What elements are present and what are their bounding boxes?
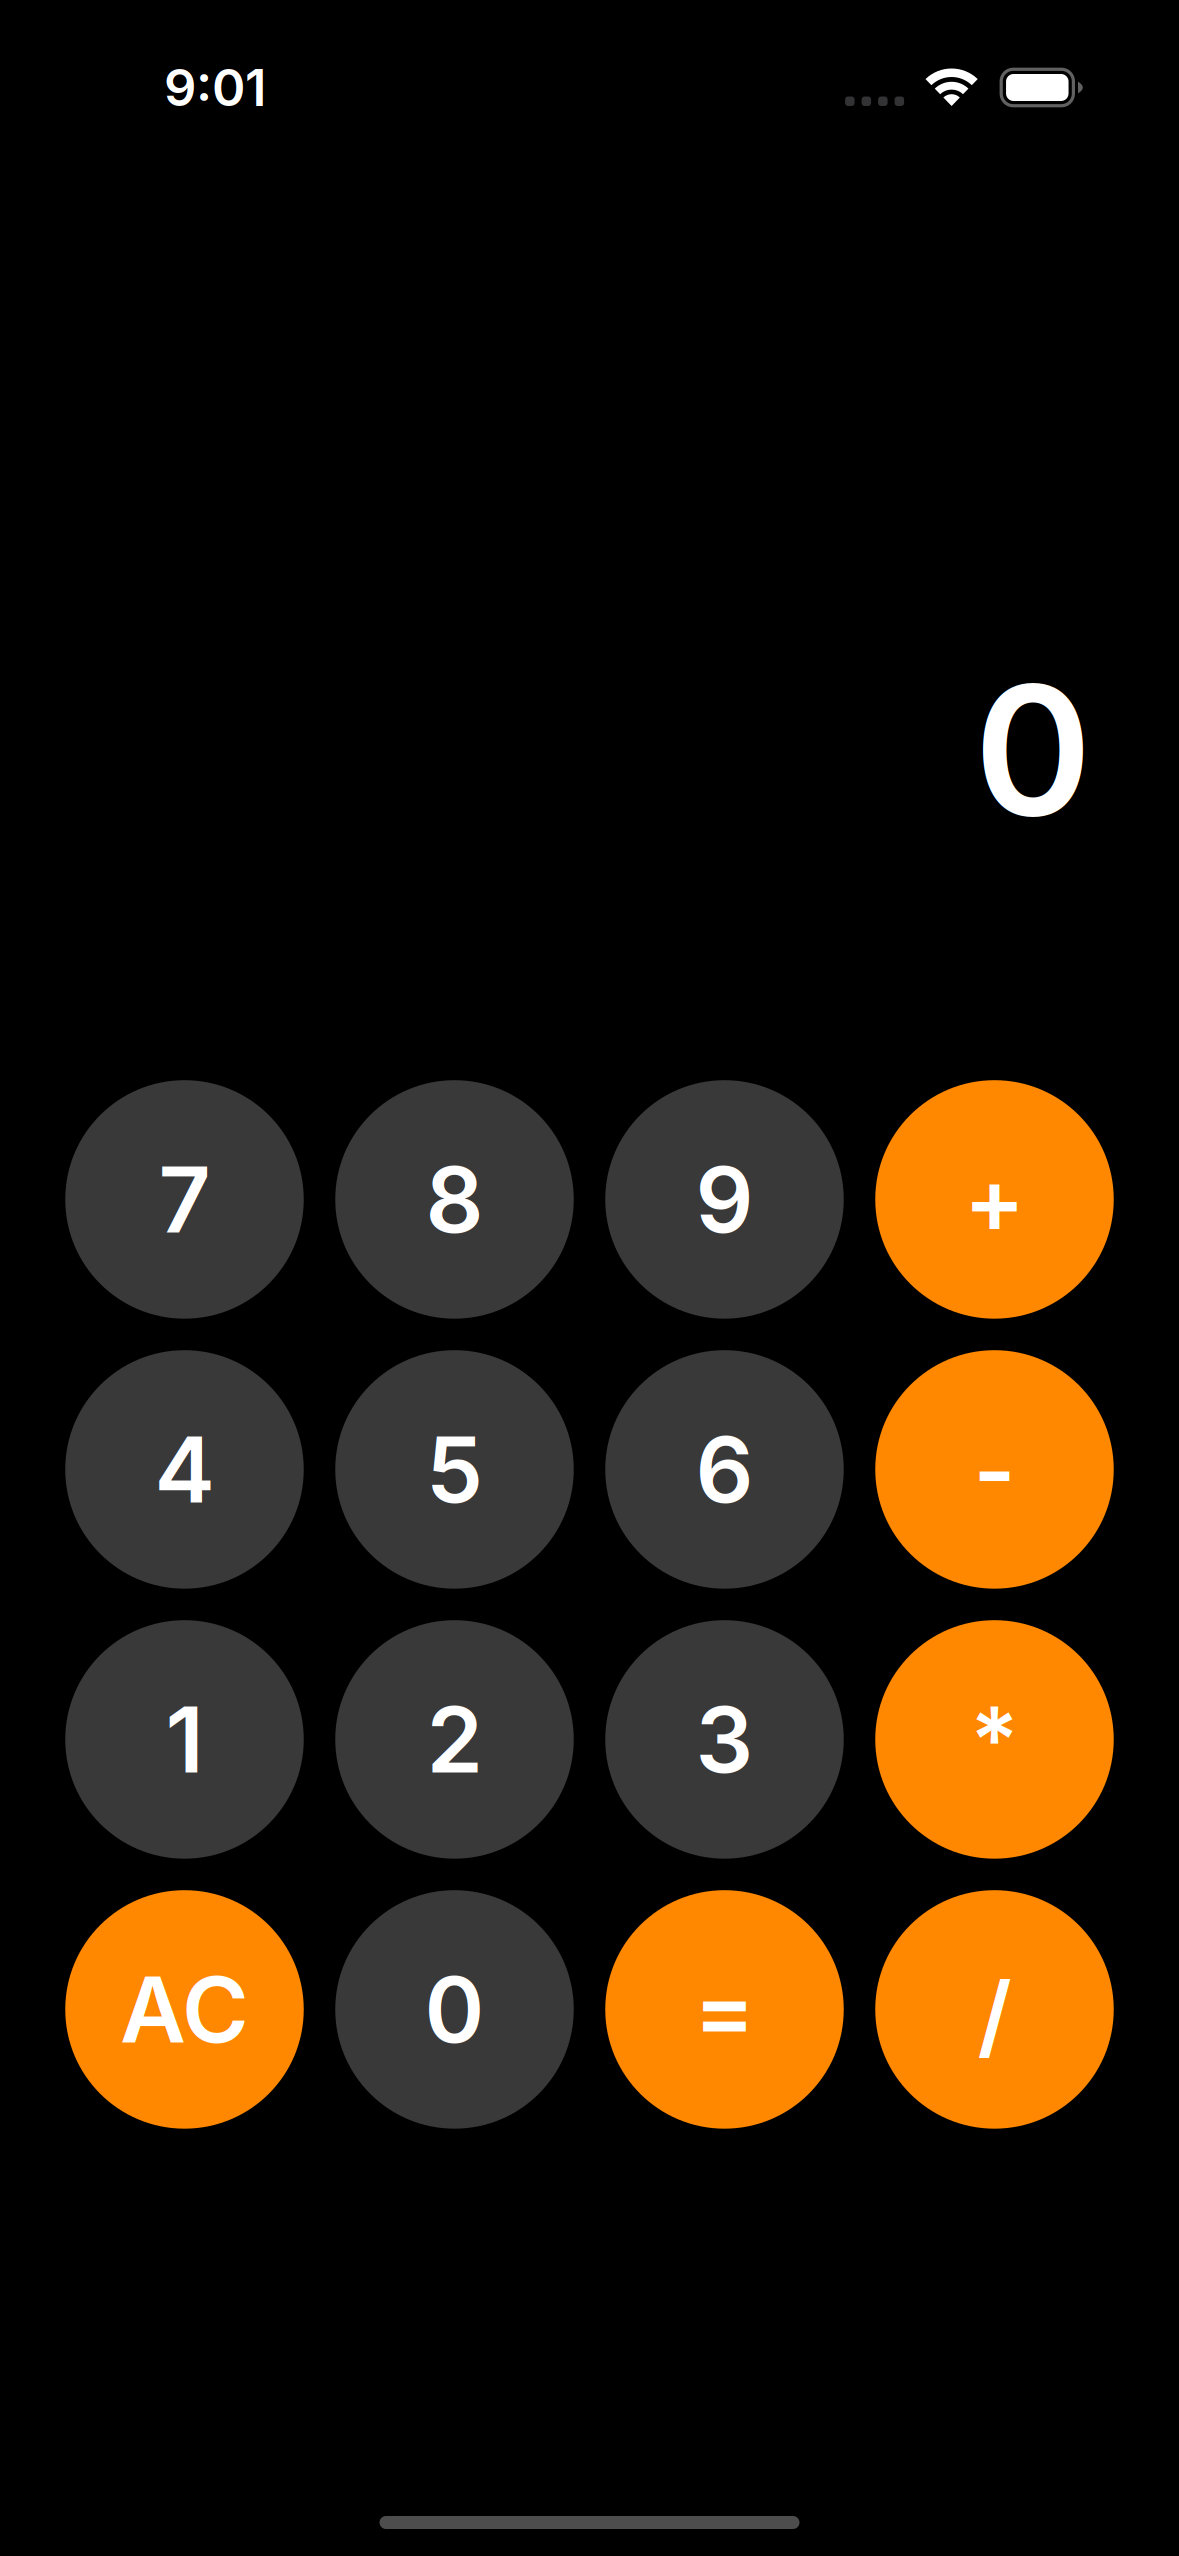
staticText: 1 xyxy=(165,1685,203,1794)
button[interactable]: 4 xyxy=(65,1350,304,1589)
button[interactable]: AC xyxy=(65,1890,304,2129)
staticText: 0 xyxy=(424,1955,484,2064)
button[interactable]: 7 xyxy=(65,1080,304,1319)
staticText: * xyxy=(970,1685,1019,1794)
button[interactable]: 3 xyxy=(605,1620,844,1859)
button[interactable]: 5 xyxy=(335,1350,574,1589)
button[interactable]: 6 xyxy=(605,1350,844,1589)
staticText: 8 xyxy=(425,1145,483,1254)
staticText: / xyxy=(977,1960,1011,2070)
button[interactable]: - xyxy=(875,1350,1114,1589)
button[interactable]: 9 xyxy=(605,1080,844,1319)
button[interactable]: + xyxy=(875,1080,1114,1319)
button[interactable]: = xyxy=(605,1890,844,2129)
button[interactable]: 0 xyxy=(335,1890,574,2129)
staticText: 5 xyxy=(426,1415,483,1524)
button[interactable]: * xyxy=(875,1620,1114,1859)
staticText: 6 xyxy=(695,1415,753,1524)
staticText: - xyxy=(973,1416,1015,1525)
staticText: 9 xyxy=(695,1145,753,1254)
button[interactable]: 8 xyxy=(335,1080,574,1319)
staticText: = xyxy=(694,1955,755,2064)
staticText: AC xyxy=(120,1955,249,2064)
button[interactable]: / xyxy=(875,1890,1114,2129)
staticText: 3 xyxy=(695,1685,753,1794)
staticText: 0 xyxy=(974,642,1092,858)
staticText: 7 xyxy=(158,1145,210,1254)
staticText: + xyxy=(964,1145,1025,1255)
button[interactable]: 1 xyxy=(65,1620,304,1859)
button[interactable]: 2 xyxy=(335,1620,574,1859)
staticText: 2 xyxy=(426,1685,482,1794)
staticText: 4 xyxy=(154,1415,214,1524)
staticText: 9:01 xyxy=(164,57,266,118)
